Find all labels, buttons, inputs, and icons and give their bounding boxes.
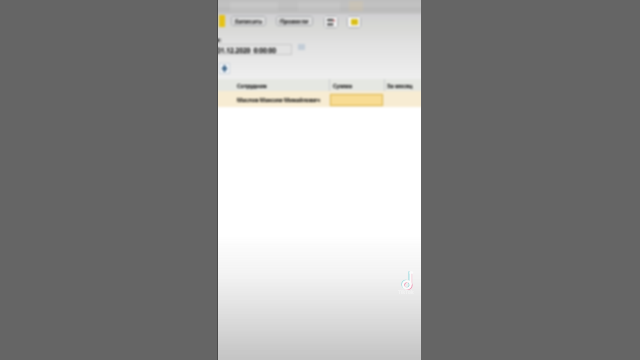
staticText: Сумма [333, 82, 352, 90]
staticText: TikTok [398, 289, 414, 296]
staticText: Маслов Максим Михайлович [237, 96, 320, 104]
staticText: За месяц [387, 82, 413, 90]
button[interactable]: Календарь [298, 44, 305, 50]
staticText: т: [218, 36, 222, 44]
staticText: Сумма [333, 82, 352, 90]
button[interactable]: Пересчитать [324, 16, 338, 28]
button[interactable]: Сохранить [219, 15, 225, 27]
staticText: Записать [234, 18, 262, 26]
staticText: Сотрудник [237, 82, 267, 90]
staticText: 01.12.2020 0:00:00 [218, 46, 276, 55]
button[interactable]: Провести [276, 16, 313, 26]
other: TikTok [398, 268, 418, 296]
staticText: Записать [235, 17, 263, 25]
staticText: Сотрудник [237, 82, 267, 90]
staticText: Маслов Максим Михайлович [237, 96, 320, 104]
staticText: Провести [280, 17, 309, 25]
button[interactable]: Печать [347, 16, 361, 28]
staticText: Провести [279, 18, 308, 26]
button[interactable]: Записать [231, 16, 266, 26]
button[interactable]: Заполнить [219, 63, 230, 74]
staticText: т: [218, 36, 222, 44]
staticText: За месяц [387, 82, 413, 90]
staticText: 01.12.2020 0:00:00 [218, 46, 276, 55]
button[interactable] [218, 91, 421, 107]
